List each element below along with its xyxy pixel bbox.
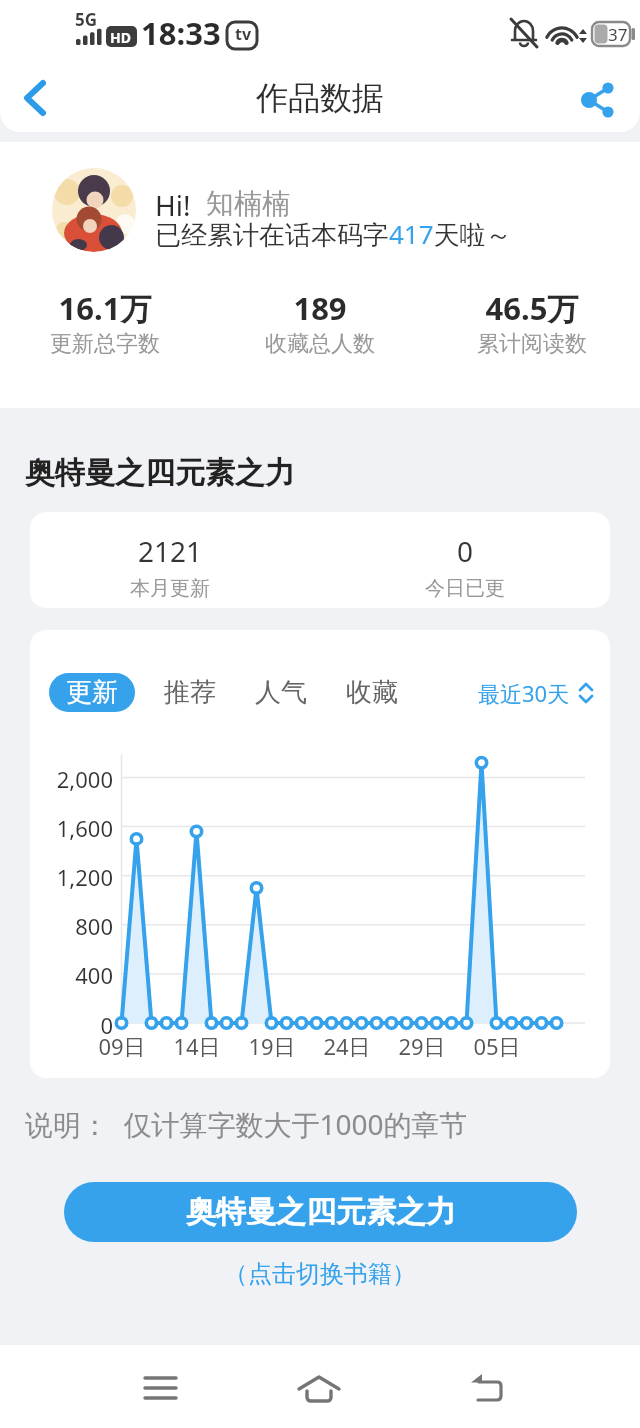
staticText: 5G [75,8,98,31]
button[interactable] [454,1359,514,1415]
staticText: 作品数据 [0,78,640,118]
staticText: 人气 [255,676,307,709]
button[interactable] [130,1359,190,1415]
staticText: 800 [30,911,113,941]
staticText: HD [110,28,131,47]
staticText: 今日已更 [365,576,565,601]
button[interactable]: 更新 [49,673,135,712]
staticText: 推荐 [164,676,216,709]
staticText: （点击切换书籍） [224,1259,416,1289]
staticText: 说明： 仅计算字数大于1000的章节 [25,1105,468,1143]
button[interactable]: 人气 [241,673,321,712]
staticText: Hi! [155,186,191,224]
staticText: 更新总字数 [5,330,205,358]
staticText: 1,200 [30,862,113,892]
button[interactable]: 奥特曼之四元素之力 [64,1182,577,1242]
staticText: 2121 [70,532,270,570]
button[interactable]: 收藏 [332,673,412,712]
staticText: 奥特曼之四元素之力 [186,1193,456,1231]
staticText: 累计阅读数 [432,330,632,358]
staticText: 收藏总人数 [220,330,420,358]
staticText: 05日 [457,1031,537,1061]
staticText: 已经累计在话本码字417天啦～ [155,216,512,252]
staticText: 18:33 [141,12,221,54]
button[interactable] [12,76,62,124]
staticText: 14日 [157,1031,237,1061]
staticText: 189 [220,287,420,329]
staticText: 本月更新 [70,576,270,601]
staticText: 16.1万 [5,287,205,329]
button[interactable]: 推荐 [150,673,230,712]
button[interactable]: 最近30天 [478,673,593,712]
staticText: 19日 [232,1031,312,1061]
button[interactable]: （点击切换书籍） [0,1259,640,1289]
staticText: tv [235,23,252,45]
staticText: 29日 [382,1031,462,1061]
staticText: 46.5万 [432,287,632,329]
staticText: 奥特曼之四元素之力 [25,454,295,492]
staticText: 0 [365,532,565,570]
button[interactable] [52,168,136,252]
staticText: 知楠楠 [206,186,290,221]
staticText: 更新 [66,676,118,709]
staticText: 1,600 [30,813,113,843]
button[interactable] [572,76,626,124]
staticText: 2,000 [30,764,113,794]
staticText: 24日 [307,1031,387,1061]
staticText: 09日 [82,1031,162,1061]
staticText: 400 [30,960,113,990]
staticText: 最近30天 [478,678,570,708]
staticText: 37 [608,23,628,46]
staticText: 收藏 [346,676,398,709]
staticText: 0 [30,1010,113,1040]
button[interactable] [289,1359,349,1415]
